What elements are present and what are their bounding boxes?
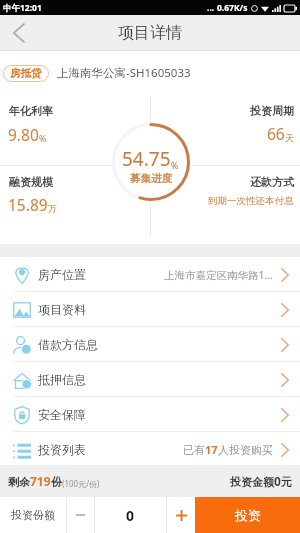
button[interactable]: 借款方信息 (0, 327, 300, 362)
staticText: 剩余 (8, 475, 30, 489)
staticText: 还款方式 (250, 175, 294, 189)
staticText: 天 (285, 132, 294, 143)
staticText: 上海南华公寓-SH1605033 (57, 65, 191, 81)
staticText: 项目详情 (118, 23, 182, 43)
button[interactable]: Increase (167, 497, 195, 533)
staticText: 房抵贷 (10, 67, 42, 80)
staticText: % (171, 159, 179, 171)
button[interactable]: 抵押信息 (0, 362, 300, 397)
button[interactable]: 项目资料 (0, 292, 300, 327)
staticText: 抵押信息 (38, 372, 86, 387)
staticText: 9.80 (8, 124, 39, 145)
staticText: 中午12:01 (3, 2, 42, 14)
staticText: 万 (48, 203, 57, 214)
staticText: 0 (126, 506, 135, 525)
staticText: 上海市嘉定区南华路1… (164, 268, 273, 282)
staticText: 投资份额 (11, 508, 55, 522)
staticText: 到期一次性还本付息 (208, 195, 294, 207)
staticText: 安全保障 (38, 407, 86, 422)
staticText: ... (207, 2, 215, 14)
staticText: 融资规模 (9, 175, 53, 189)
staticText: 投资周期 (250, 104, 294, 118)
button[interactable]: 投资列表 (0, 432, 300, 467)
staticText: (100元/份) (62, 478, 100, 489)
button[interactable]: 房产位置 (0, 257, 300, 292)
button[interactable]: Back (0, 15, 36, 51)
staticText: 年化利率 (9, 104, 53, 118)
staticText: 募集进度 (130, 172, 172, 185)
staticText: 0.67K/s (217, 2, 248, 14)
staticText: 借款方信息 (38, 337, 98, 352)
staticText: 人投资购买 (218, 443, 273, 457)
staticText: 66 (267, 123, 285, 144)
button[interactable]: 投资 (195, 497, 300, 533)
staticText: % (39, 132, 47, 144)
staticText: 17 (205, 442, 218, 457)
button[interactable]: Decrease (67, 497, 94, 533)
staticText: 投资金额 (230, 475, 274, 489)
staticText: 54.75 (122, 146, 171, 172)
staticText: 房产位置 (38, 267, 86, 282)
staticText: 15.89 (8, 194, 48, 215)
staticText: 投资列表 (38, 442, 86, 457)
button[interactable]: 安全保障 (0, 397, 300, 432)
staticText: 719 (30, 473, 51, 489)
staticText: 元 (281, 475, 292, 489)
staticText: 投资 (235, 507, 261, 523)
staticText: 0 (274, 473, 281, 489)
staticText: 项目资料 (38, 302, 86, 317)
staticText: 已有 (183, 443, 205, 457)
staticText: 份 (51, 475, 62, 489)
